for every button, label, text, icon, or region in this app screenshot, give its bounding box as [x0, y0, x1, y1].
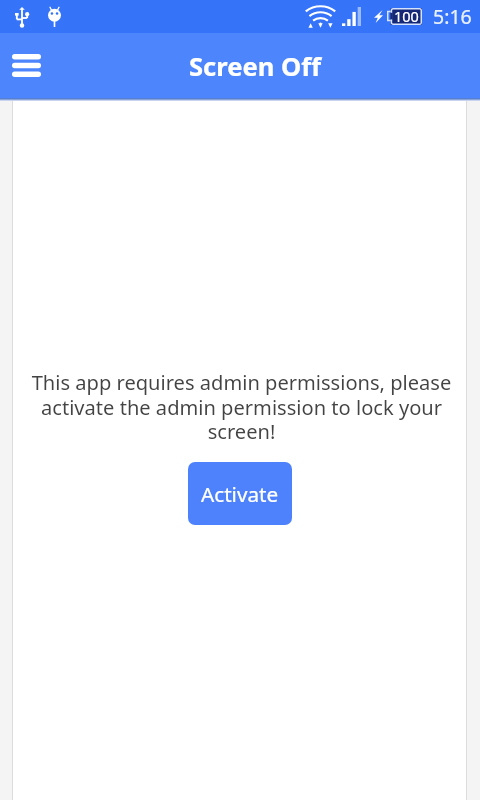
staticText: 5:16: [433, 3, 472, 30]
staticText: Activate: [201, 480, 279, 508]
button[interactable]: Activate: [188, 462, 292, 525]
staticText: 100: [394, 6, 419, 23]
button[interactable]: Open navigation menu: [3, 42, 49, 88]
staticText: Screen Off: [189, 49, 322, 84]
staticText: This app requires admin permissions, ple…: [17, 369, 466, 445]
